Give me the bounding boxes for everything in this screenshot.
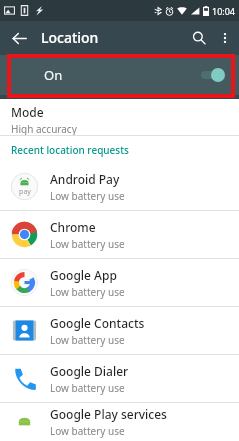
staticText: Recent location requests: [11, 143, 129, 157]
button[interactable]: More options: [213, 26, 237, 50]
staticText: Google Play services: [50, 406, 167, 422]
staticText: Google Contacts: [50, 315, 145, 331]
staticText: Location: [41, 28, 99, 47]
staticText: Mode: [11, 104, 44, 120]
staticText: Google App: [50, 267, 117, 283]
staticText: Low battery use: [50, 285, 125, 299]
button[interactable]: Google Play services: [0, 403, 239, 441]
staticText: Android Pay: [50, 171, 120, 187]
button[interactable]: pay: [0, 163, 239, 210]
button[interactable]: Google App: [0, 259, 239, 306]
staticText: On: [44, 66, 63, 84]
staticText: Low battery use: [50, 333, 125, 347]
button[interactable]: Google Contacts: [0, 307, 239, 354]
button[interactable]: Search: [185, 24, 213, 52]
button[interactable]: Google Dialer: [0, 355, 239, 402]
button[interactable]: On: [0, 55, 239, 95]
button[interactable]: Chrome: [0, 211, 239, 258]
staticText: pay: [19, 187, 31, 197]
staticText: 10:04: [212, 5, 236, 17]
staticText: Low battery use: [50, 424, 125, 438]
button[interactable]: Mode: [0, 99, 239, 135]
staticText: Low battery use: [50, 381, 125, 395]
staticText: Low battery use: [50, 189, 125, 203]
staticText: Chrome: [50, 219, 96, 235]
staticText: Low battery use: [50, 237, 125, 251]
staticText: Google Dialer: [50, 363, 129, 379]
button[interactable]: Back: [6, 25, 32, 51]
staticText: High accuracy: [11, 122, 77, 135]
